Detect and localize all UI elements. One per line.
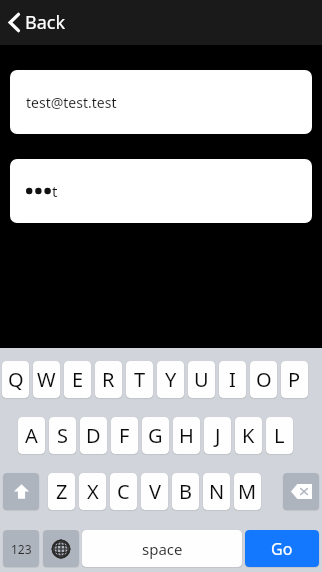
staticText: I [229,366,236,393]
staticText: X [87,478,99,505]
staticText: Go [271,538,293,560]
staticText: E [72,366,84,393]
button[interactable]: M [234,473,261,510]
staticText: S [57,422,68,449]
staticText: K [242,422,255,449]
staticText: Z [56,478,68,505]
button[interactable]: Go [245,530,319,567]
button[interactable]: F [111,417,138,454]
button[interactable]: E [64,361,91,398]
staticText: N [209,478,225,505]
button[interactable]: A [18,417,45,454]
button[interactable]: Numbers [3,530,39,567]
button[interactable]: I [219,361,246,398]
button[interactable]: Q [2,361,29,398]
button[interactable]: D [80,417,107,454]
staticText: G [148,422,163,449]
staticText: 123 [11,541,32,557]
staticText: t [52,181,58,201]
staticText: F [119,422,130,449]
button[interactable]: U [188,361,215,398]
staticText: A [25,422,38,449]
staticText: T [134,366,146,393]
button[interactable]: space [82,530,242,567]
staticText: C [117,478,130,505]
button[interactable]: Back [0,6,78,39]
button[interactable]: test@test.test [10,70,312,134]
button[interactable]: S [49,417,76,454]
staticText: P [288,366,301,393]
button[interactable]: Backspace [283,473,319,510]
button[interactable]: W [33,361,60,398]
staticText: J [215,422,221,449]
button[interactable]: Y [157,361,184,398]
button[interactable]: O [250,361,277,398]
button[interactable]: G [142,417,169,454]
staticText: Y [165,366,177,393]
staticText: space [142,539,183,559]
staticText: test@test.test [26,93,117,112]
staticText: V [149,478,161,505]
button[interactable]: C [110,473,137,510]
button[interactable]: Shift [3,473,39,510]
button[interactable]: N [203,473,230,510]
staticText: D [86,422,101,449]
button[interactable]: Z [48,473,75,510]
button[interactable]: L [266,417,293,454]
staticText: B [179,478,192,505]
button[interactable]: T [126,361,153,398]
staticText: Back [25,10,66,35]
button[interactable]: P [281,361,308,398]
staticText: R [102,366,115,393]
button[interactable]: V [141,473,168,510]
staticText: M [238,478,257,505]
button[interactable]: R [95,361,122,398]
staticText: U [194,366,209,393]
staticText: W [37,366,56,393]
button[interactable]: Switch keyboard [43,530,79,567]
button[interactable]: J [204,417,231,454]
button[interactable]: H [173,417,200,454]
button[interactable]: t [10,159,312,223]
button[interactable]: K [235,417,262,454]
staticText: Q [8,366,24,393]
button[interactable]: X [79,473,106,510]
staticText: H [179,422,194,449]
staticText: O [256,366,272,393]
button[interactable]: B [172,473,199,510]
staticText: L [274,422,285,449]
